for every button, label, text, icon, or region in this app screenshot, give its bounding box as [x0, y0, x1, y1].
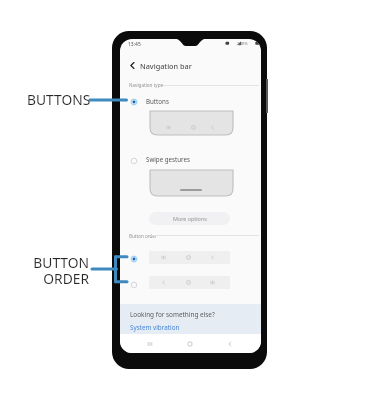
- button[interactable]: Recents: [143, 337, 157, 351]
- button[interactable]: Selected option: [127, 252, 141, 266]
- button[interactable]: [150, 170, 233, 196]
- button[interactable]: Back: [124, 57, 140, 73]
- button[interactable]: Option: [127, 278, 141, 292]
- staticText: Looking for something else?: [130, 310, 215, 319]
- staticText: 100%: [237, 41, 248, 47]
- button[interactable]: [149, 276, 230, 289]
- button[interactable]: [150, 111, 233, 135]
- staticText: More options: [173, 215, 207, 222]
- button[interactable]: More options: [149, 212, 230, 225]
- staticText: 13:45: [128, 41, 141, 48]
- button[interactable]: [149, 251, 230, 264]
- staticText: Button order: [129, 233, 157, 239]
- button[interactable]: Back: [223, 337, 237, 351]
- staticText: Buttons: [146, 97, 169, 105]
- button[interactable]: Option: [127, 154, 141, 168]
- button[interactable]: Selected option: [127, 95, 141, 109]
- staticText: Navigation bar: [140, 61, 192, 71]
- staticText: Swipe gestures: [146, 155, 190, 163]
- staticText: Navigation type: [129, 82, 164, 88]
- staticText: BUTTONS: [27, 90, 91, 109]
- staticText: BUTTON ORDER: [30, 253, 89, 288]
- button[interactable]: System vibration: [130, 323, 180, 332]
- button[interactable]: Home: [183, 337, 197, 351]
